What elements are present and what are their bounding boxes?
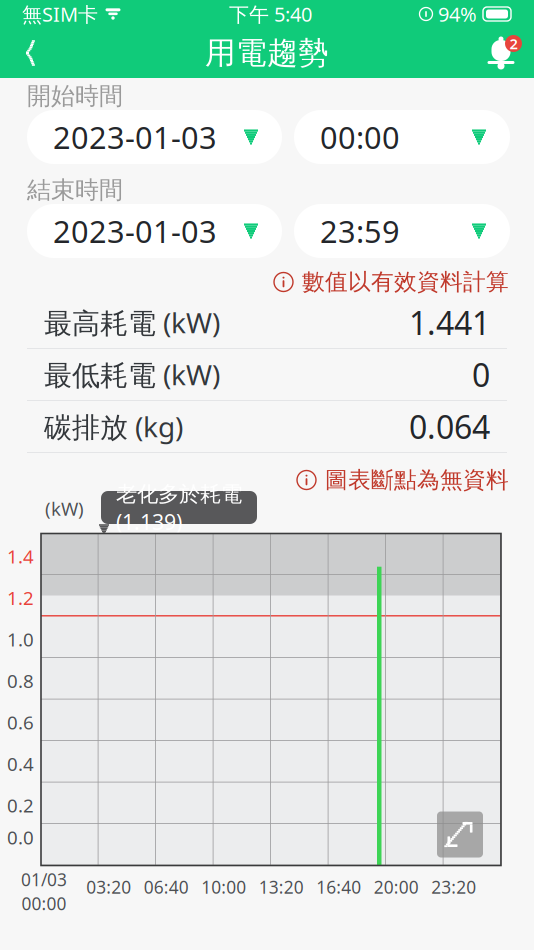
staticText: 0.8: [7, 668, 34, 693]
staticText: 2023-01-03: [53, 211, 217, 251]
staticText: 20:00: [374, 875, 419, 898]
staticText: 10:00: [201, 875, 246, 898]
staticText: 0.0: [7, 825, 34, 850]
staticText: 00:00: [320, 117, 400, 157]
staticText: 00:00: [21, 892, 66, 915]
staticText: 0.6: [7, 710, 34, 735]
staticText: 最低耗電 (kW): [44, 356, 220, 393]
button[interactable]: 返回: [7, 29, 59, 77]
button[interactable]: 數值以有效資料計算: [274, 268, 509, 296]
staticText: (kW): [45, 496, 84, 521]
staticText: 圖表斷點為無資料: [325, 466, 509, 494]
staticText: 無SIM卡: [22, 1, 98, 27]
staticText: 1.441: [409, 301, 490, 344]
staticText: 13:20: [259, 875, 304, 898]
staticText: 數值以有效資料計算: [302, 268, 509, 296]
staticText: 06:40: [144, 875, 189, 898]
button[interactable]: 2023-01-03: [27, 204, 282, 258]
staticText: 2: [509, 34, 517, 53]
staticText: 老化多於耗電 (1.139): [116, 479, 242, 536]
staticText: 碳排放 (kg): [44, 408, 183, 445]
staticText: 0.4: [7, 751, 34, 776]
staticText: 0: [472, 353, 490, 396]
button[interactable]: 00:00: [294, 110, 510, 164]
staticText: 1.2: [7, 585, 34, 610]
staticText: 下午 5:40: [229, 1, 312, 27]
button[interactable]: 23:59: [294, 204, 510, 258]
staticText: 2023-01-03: [53, 117, 217, 157]
staticText: 1.4: [7, 544, 34, 569]
staticText: 94%: [438, 1, 477, 27]
staticText: 16:40: [316, 875, 361, 898]
staticText: 01/03: [21, 868, 67, 891]
staticText: 0.2: [7, 793, 34, 818]
button[interactable]: 通知: [475, 29, 527, 77]
staticText: 用電趨勢: [205, 34, 329, 72]
button[interactable]: 2023-01-03: [27, 110, 282, 164]
staticText: 23:59: [320, 211, 400, 251]
staticText: 最高耗電 (kW): [44, 304, 220, 341]
staticText: 23:20: [431, 875, 476, 898]
staticText: 開始時間: [27, 81, 123, 111]
staticText: 03:20: [86, 875, 131, 898]
staticText: 1.0: [7, 627, 34, 652]
button[interactable]: 全螢幕: [437, 811, 483, 857]
staticText: 0.064: [409, 405, 490, 448]
button[interactable]: 圖表斷點為無資料: [297, 466, 509, 494]
staticText: 結束時間: [27, 175, 123, 205]
